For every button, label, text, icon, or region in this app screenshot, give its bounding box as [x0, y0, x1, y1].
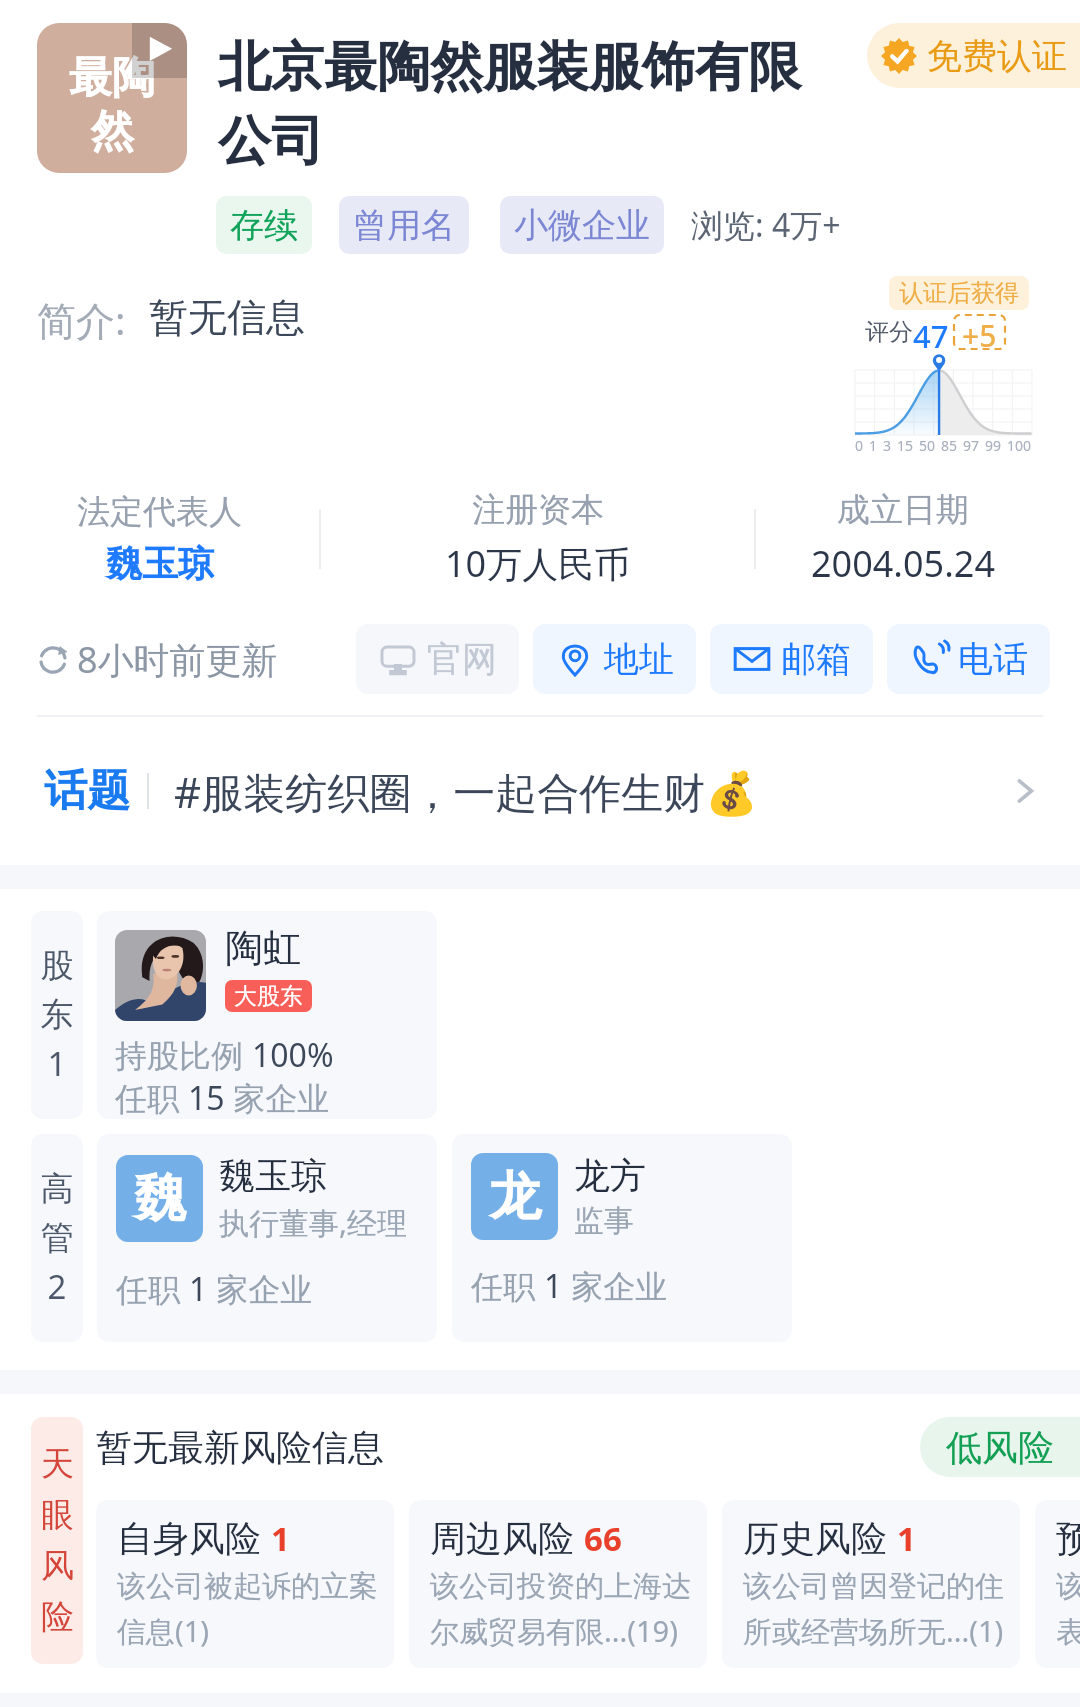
- button[interactable]: 注册资本: [321, 489, 754, 588]
- staticText: 1: [271, 1516, 290, 1556]
- button[interactable]: Company logo: [37, 23, 187, 173]
- staticText: 1: [897, 1516, 916, 1556]
- staticText: 2004.05.24: [811, 539, 996, 588]
- staticText: 高管 2: [31, 1168, 83, 1309]
- staticText: 监事: [574, 1202, 634, 1240]
- staticText: 成立日期: [837, 489, 969, 531]
- staticText: 1: [544, 1264, 563, 1308]
- button[interactable]: Open topic: [1007, 773, 1043, 809]
- staticText: 该公司曾因登记的住所或经营场所无...(1): [743, 1568, 1017, 1650]
- staticText: 魏玉琼: [106, 541, 214, 586]
- staticText: 15: [188, 1076, 225, 1119]
- button[interactable]: 预警提醒: [1035, 1500, 1080, 1668]
- button[interactable]: 魏: [97, 1134, 437, 1342]
- staticText: 家企业: [225, 1076, 330, 1119]
- staticText: 1: [189, 1267, 208, 1311]
- button[interactable]: 陶虹: [97, 911, 437, 1119]
- button[interactable]: 自身风险: [96, 1500, 394, 1668]
- staticText: 该公司新增的法定代表人变更信息...(2): [1056, 1568, 1080, 1650]
- staticText: 47: [913, 315, 949, 349]
- staticText: 认证后获得: [899, 278, 1019, 308]
- staticText: 陶虹: [225, 924, 301, 972]
- staticText: 85: [941, 436, 958, 455]
- staticText: 魏玉琼: [219, 1153, 327, 1198]
- button[interactable]: 小微企业: [500, 196, 664, 254]
- staticText: 执行董事,经理: [219, 1202, 408, 1243]
- staticText: 低风险: [946, 1425, 1054, 1470]
- staticText: 预警提醒: [1056, 1516, 1080, 1556]
- staticText: 电话: [958, 637, 1028, 681]
- button[interactable]: 历史风险: [722, 1500, 1020, 1668]
- button[interactable]: 话题: [0, 717, 1080, 865]
- staticText: 周边风险: [430, 1516, 574, 1556]
- button[interactable]: 免费认证: [867, 23, 1080, 88]
- staticText: 8小时前更新: [77, 635, 278, 684]
- staticText: 家企业: [563, 1264, 668, 1308]
- staticText: 浏览: 4万+: [691, 203, 841, 247]
- button[interactable]: 周边风险: [409, 1500, 707, 1668]
- staticText: 地址: [604, 637, 674, 681]
- staticText: 99: [985, 436, 1002, 455]
- staticText: 3: [883, 436, 892, 455]
- staticText: 任职: [115, 1076, 188, 1119]
- button[interactable]: 电话: [887, 624, 1050, 694]
- staticText: 大股东: [234, 982, 303, 1011]
- staticText: 天 眼 风 险: [41, 1443, 74, 1638]
- staticText: 1: [869, 436, 878, 455]
- staticText: 50: [919, 436, 936, 455]
- staticText: 然: [91, 105, 134, 159]
- staticText: 97: [963, 436, 980, 455]
- button[interactable]: Updated 8 hours ago: [37, 635, 278, 684]
- staticText: 暂无信息: [149, 293, 305, 342]
- staticText: 最陶: [69, 51, 155, 105]
- staticText: 任职: [471, 1264, 544, 1308]
- staticText: 法定代表人: [77, 491, 242, 533]
- staticText: 话题: [44, 764, 130, 818]
- staticText: 邮箱: [781, 637, 851, 681]
- button[interactable]: 官网: [356, 624, 519, 694]
- staticText: 持股比例: [115, 1033, 252, 1076]
- staticText: 曾用名: [353, 204, 455, 247]
- staticText: 龙方: [574, 1153, 646, 1198]
- button[interactable]: 曾用名: [339, 196, 469, 254]
- staticText: 100: [1007, 436, 1032, 455]
- staticText: 魏: [134, 1166, 186, 1232]
- staticText: 该公司被起诉的立案信息(1): [117, 1568, 391, 1650]
- staticText: 评分: [865, 317, 913, 347]
- staticText: 龙: [489, 1164, 541, 1230]
- staticText: +5: [962, 315, 997, 349]
- button[interactable]: 邮箱: [710, 624, 873, 694]
- staticText: 100%: [252, 1033, 334, 1076]
- staticText: 存续: [230, 204, 298, 247]
- staticText: 官网: [427, 637, 497, 681]
- staticText: 简介:: [37, 293, 126, 346]
- button[interactable]: 法定代表人: [0, 491, 319, 586]
- button[interactable]: 存续: [216, 196, 312, 254]
- staticText: 北京最陶然服装服饰有限公司: [218, 34, 818, 174]
- staticText: 该公司投资的上海达尔威贸易有限...(19): [430, 1568, 704, 1650]
- staticText: 家企业: [208, 1267, 313, 1311]
- staticText: 暂无最新风险信息: [96, 1425, 384, 1470]
- staticText: 15: [897, 436, 914, 455]
- staticText: 10万人民币: [445, 539, 631, 588]
- staticText: 任职: [116, 1267, 189, 1311]
- button[interactable]: 低风险: [920, 1417, 1080, 1477]
- staticText: 注册资本: [472, 489, 604, 531]
- button[interactable]: 地址: [533, 624, 696, 694]
- staticText: 历史风险: [743, 1516, 887, 1556]
- staticText: 66: [584, 1516, 622, 1556]
- staticText: #服装纺织圈，一起合作生财💰: [174, 763, 1007, 820]
- staticText: 小微企业: [514, 204, 650, 247]
- button[interactable]: 龙: [452, 1134, 792, 1342]
- staticText: 0: [855, 436, 864, 455]
- staticText: 自身风险: [117, 1516, 261, 1556]
- staticText: 免费认证: [927, 34, 1067, 78]
- staticText: 股东 1: [31, 945, 83, 1086]
- button[interactable]: 成立日期: [756, 489, 1050, 588]
